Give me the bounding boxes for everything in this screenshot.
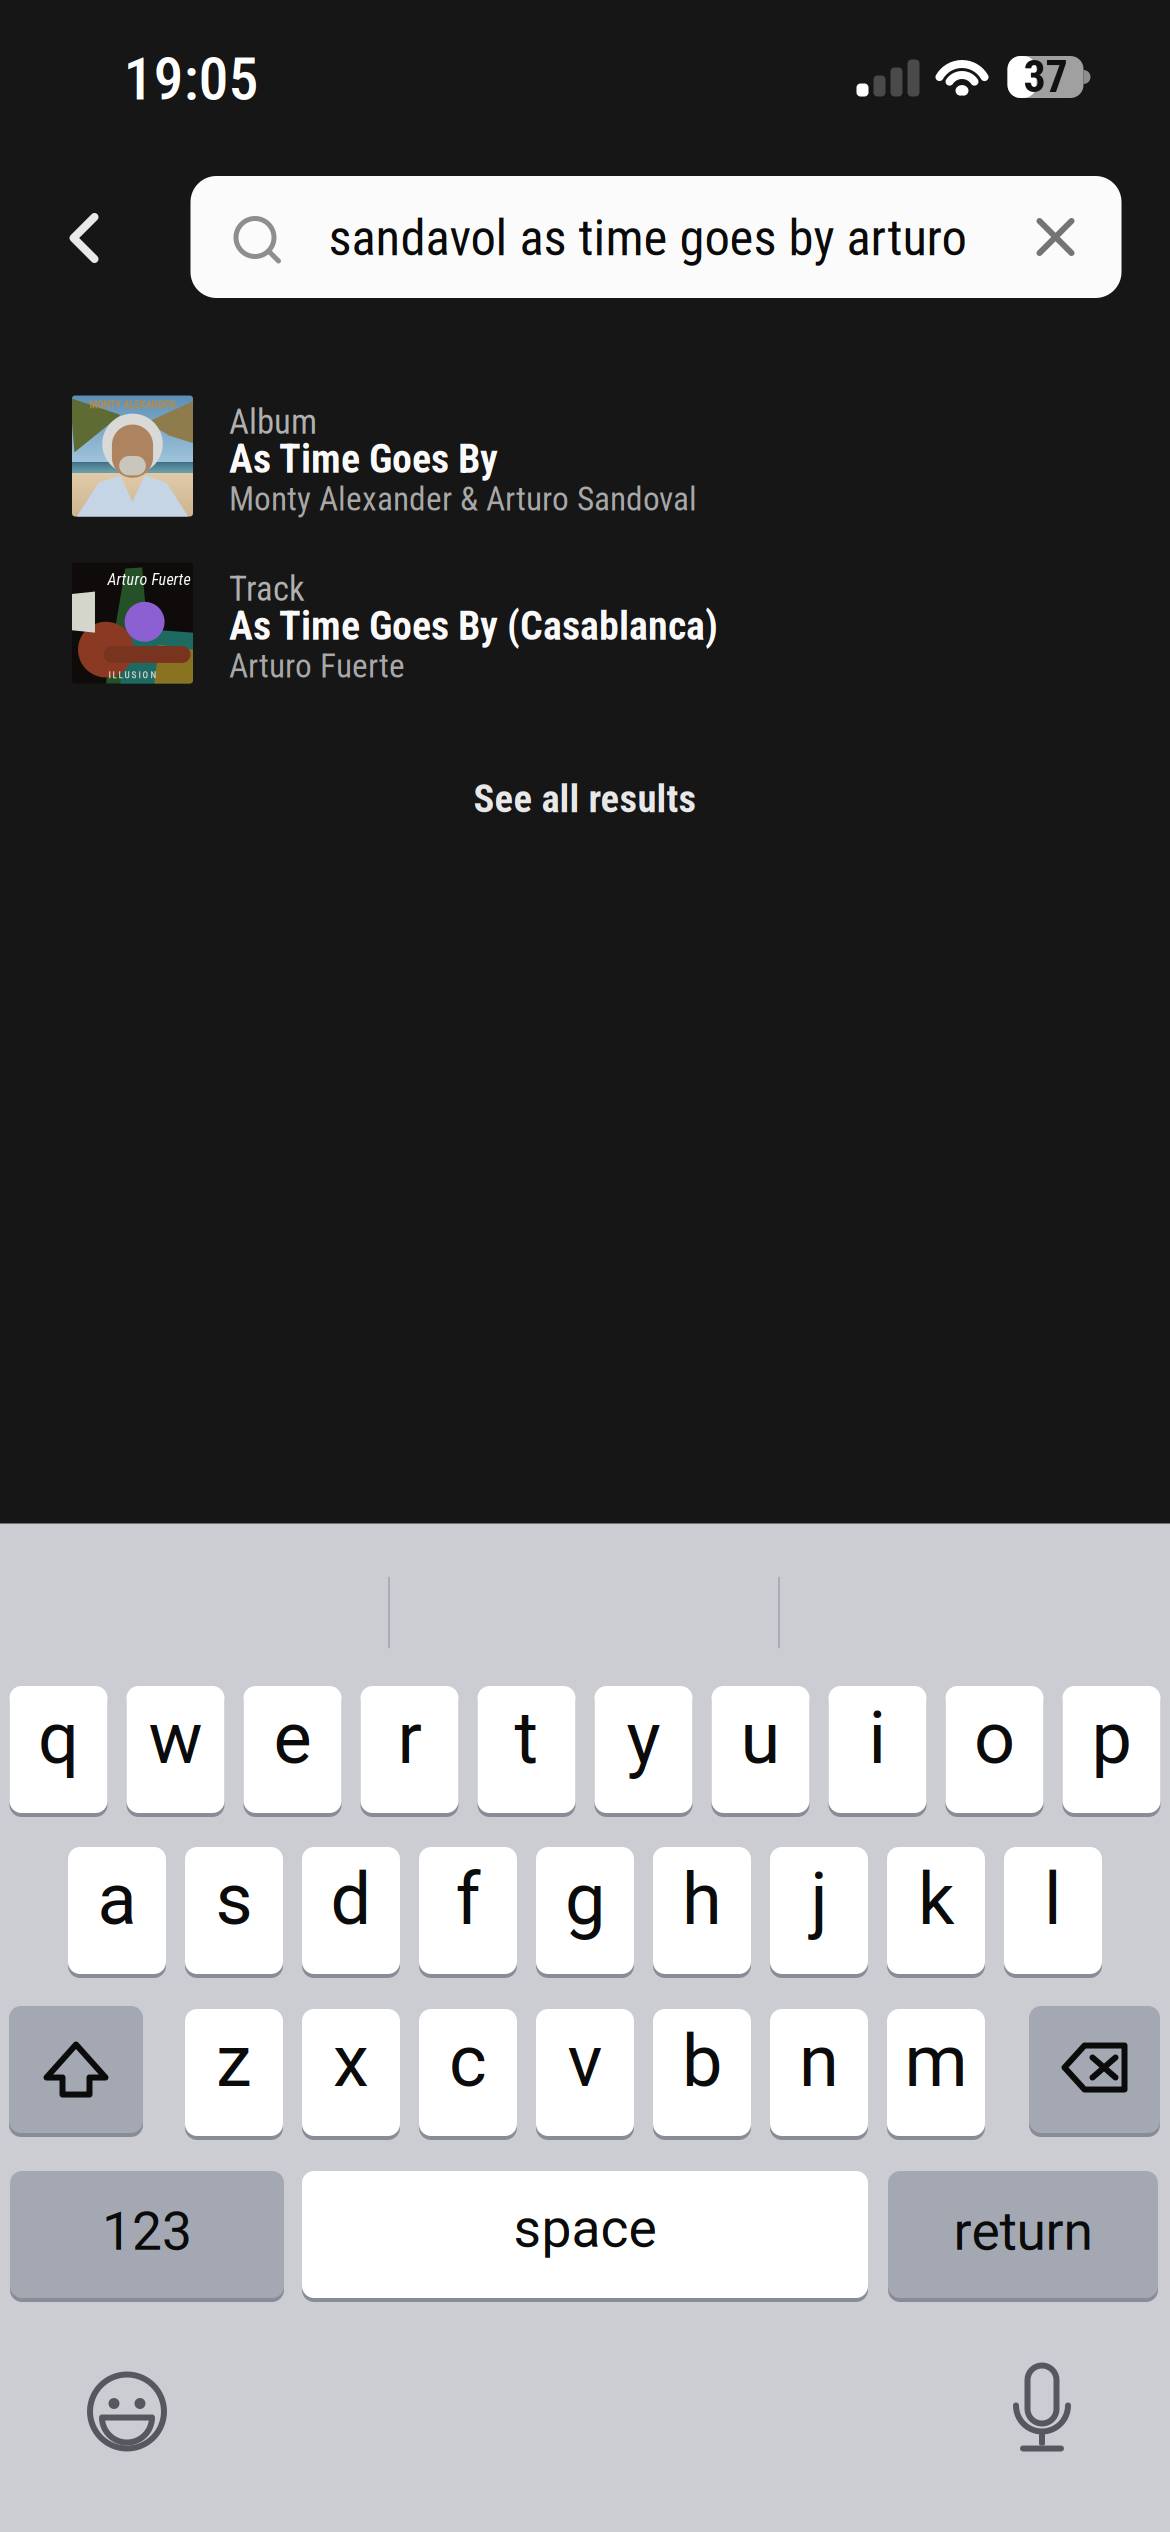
button[interactable]: m (887, 2009, 985, 2136)
staticText: See all results (473, 776, 696, 822)
staticText: c (449, 2019, 487, 2104)
staticText: As Time Goes By (229, 436, 498, 482)
button[interactable]: i (828, 1686, 926, 1813)
button[interactable]: h (653, 1847, 751, 1974)
staticText: 19:05 (123, 44, 258, 114)
staticText: I L L U S I O N (108, 670, 156, 680)
staticText: p (1091, 1696, 1131, 1781)
staticText: a (97, 1857, 136, 1942)
staticText: y (626, 1696, 660, 1781)
button[interactable]: e (243, 1686, 341, 1813)
staticText: b (682, 2019, 722, 2104)
staticText: q (38, 1696, 79, 1781)
button[interactable]: Clear search (1016, 176, 1094, 298)
button[interactable]: space (302, 2171, 868, 2298)
button[interactable]: b (653, 2009, 751, 2136)
staticText: k (918, 1857, 954, 1942)
staticText: w (148, 1696, 202, 1781)
staticText: Arturo Fuerte (108, 570, 191, 589)
staticText: j (810, 1857, 827, 1942)
staticText: l (1044, 1857, 1062, 1942)
staticText: r (397, 1696, 421, 1781)
staticText: Album (229, 402, 317, 442)
staticText: MONTY ALEXANDER (89, 398, 175, 411)
staticText: d (330, 1857, 371, 1942)
staticText: z (216, 2019, 252, 2104)
staticText: t (514, 1696, 538, 1781)
staticText: g (565, 1857, 605, 1942)
button[interactable]: MONTY ALEXANDER (72, 395, 1098, 517)
staticText: n (799, 2019, 839, 2104)
staticText: h (682, 1857, 722, 1942)
button[interactable]: Emoji keyboard (72, 2356, 182, 2466)
button[interactable]: 123 (10, 2171, 284, 2298)
button[interactable]: Search field: sandavol as time goes by a… (190, 176, 1121, 298)
button[interactable]: c (419, 2009, 517, 2136)
button[interactable]: w (126, 1686, 224, 1813)
button[interactable]: t (477, 1686, 575, 1813)
button[interactable]: l (1004, 1847, 1102, 1974)
staticText: x (333, 2019, 369, 2104)
button[interactable]: o (945, 1686, 1043, 1813)
button[interactable]: d (302, 1847, 400, 1974)
button[interactable]: See all results (385, 764, 785, 834)
staticText: Arturo Fuerte (229, 646, 405, 686)
staticText: s (215, 1857, 252, 1942)
button[interactable]: j (770, 1847, 868, 1974)
button[interactable]: Delete (1029, 2006, 1160, 2133)
staticText: v (567, 2019, 602, 2104)
button[interactable]: q (9, 1686, 107, 1813)
button[interactable]: Back (29, 178, 139, 298)
button[interactable]: f (419, 1847, 517, 1974)
button[interactable]: x (302, 2009, 400, 2136)
staticText: e (273, 1696, 311, 1781)
button[interactable]: return (888, 2171, 1158, 2298)
staticText: space (513, 2197, 656, 2260)
button[interactable]: z (185, 2009, 283, 2136)
staticText: sandavol as time goes by arturo (328, 208, 966, 268)
button[interactable]: u (711, 1686, 809, 1813)
staticText: return (953, 2200, 1092, 2263)
staticText: m (904, 2019, 967, 2104)
button[interactable]: n (770, 2009, 868, 2136)
button[interactable]: Arturo Fuerte (72, 562, 1098, 684)
staticText: Track (229, 569, 305, 609)
staticText: As Time Goes By (Casablanca) (229, 603, 718, 649)
button[interactable]: v (536, 2009, 634, 2136)
staticText: i (868, 1696, 886, 1781)
button[interactable]: k (887, 1847, 985, 1974)
button[interactable]: Dictation (987, 2354, 1097, 2464)
button[interactable]: a (68, 1847, 166, 1974)
staticText: o (974, 1696, 1015, 1781)
staticText: Monty Alexander & Arturo Sandoval (229, 479, 697, 519)
button[interactable]: y (594, 1686, 692, 1813)
button[interactable]: Shift (9, 2006, 143, 2133)
button[interactable]: p (1062, 1686, 1160, 1813)
button[interactable]: s (185, 1847, 283, 1974)
staticText: 123 (102, 2200, 192, 2263)
staticText: f (455, 1857, 480, 1942)
staticText: u (740, 1696, 780, 1781)
staticText: 37 (1023, 51, 1067, 103)
button[interactable]: r (360, 1686, 458, 1813)
button[interactable]: g (536, 1847, 634, 1974)
